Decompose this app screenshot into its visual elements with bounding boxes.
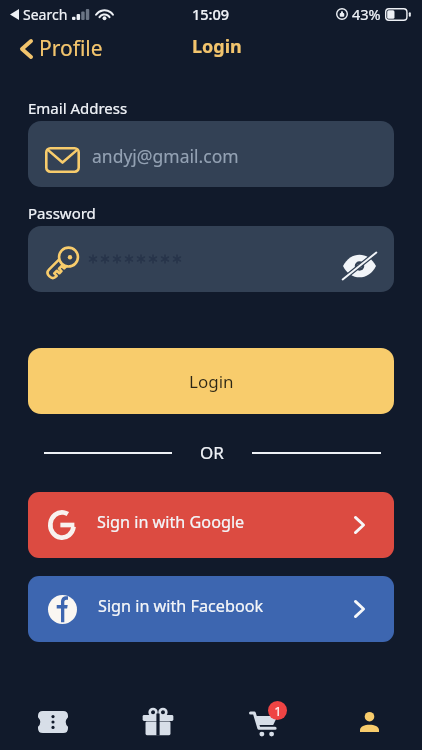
button[interactable]: Tickets (0, 694, 105, 750)
staticText: Sign in with Google (97, 511, 245, 533)
staticText: 1 (274, 702, 282, 720)
staticText: Search (23, 5, 68, 24)
button[interactable]: Gifts (105, 694, 210, 750)
button[interactable]: Show password (342, 240, 380, 278)
staticText: Password (28, 203, 96, 221)
button[interactable]: Cart (210, 694, 316, 750)
button[interactable]: Show password (28, 226, 394, 292)
button[interactable]: Profile (14, 30, 109, 67)
button[interactable]: Sign in with Facebook (28, 576, 394, 642)
button[interactable]: andyj@gmail.com (28, 121, 394, 187)
staticText: Login (189, 370, 234, 393)
staticText: 15:09 (192, 4, 230, 24)
button[interactable]: Sign in with Google (28, 492, 394, 558)
button[interactable]: Login (28, 348, 394, 414)
staticText: 43% (352, 4, 381, 24)
staticText: Profile (39, 34, 103, 63)
button[interactable]: Profile (316, 694, 422, 750)
staticText: OR (200, 441, 224, 459)
staticText: Email Address (28, 98, 128, 116)
staticText: andyj@gmail.com (92, 144, 239, 168)
staticText: Login (192, 34, 242, 59)
staticText: Sign in with Facebook (98, 595, 264, 617)
